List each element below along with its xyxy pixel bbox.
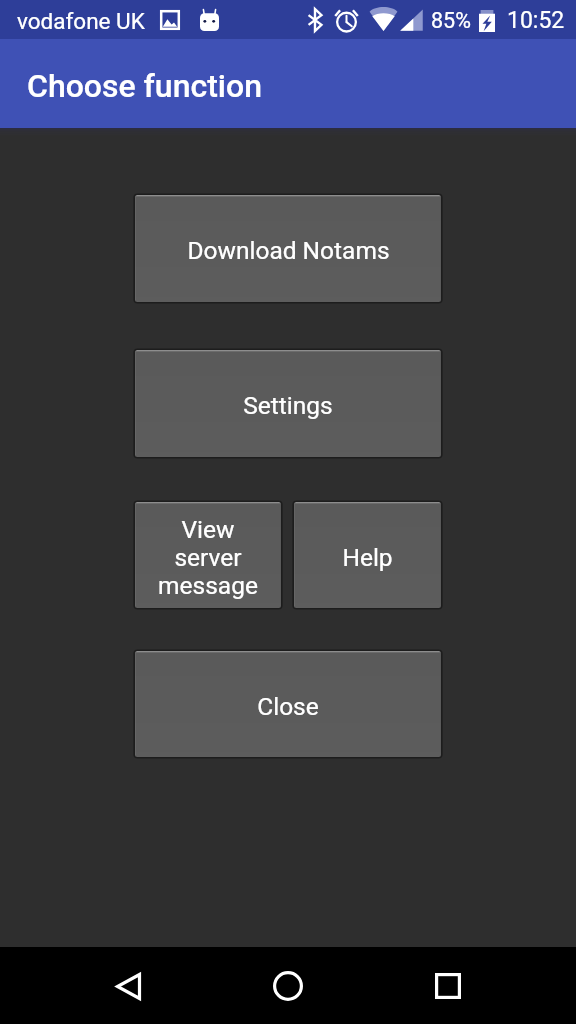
- staticText: 85%: [431, 8, 471, 33]
- staticText: View server message: [158, 515, 258, 600]
- staticText: Choose function: [27, 67, 262, 105]
- staticText: vodafone UK: [17, 8, 145, 34]
- button[interactable]: View server message: [135, 502, 281, 608]
- staticText: 10:52: [507, 7, 565, 34]
- staticText: Download Notams: [187, 236, 390, 265]
- button[interactable]: Download Notams: [135, 195, 441, 302]
- button[interactable]: Close: [135, 651, 441, 757]
- button[interactable]: Recent apps: [424, 962, 472, 1010]
- staticText: Close: [257, 692, 319, 721]
- button[interactable]: Help: [294, 502, 441, 608]
- button[interactable]: Back: [104, 962, 152, 1010]
- button[interactable]: Home: [264, 962, 312, 1010]
- staticText: Settings: [243, 391, 333, 420]
- staticText: Help: [342, 543, 393, 572]
- button[interactable]: Settings: [135, 350, 441, 457]
